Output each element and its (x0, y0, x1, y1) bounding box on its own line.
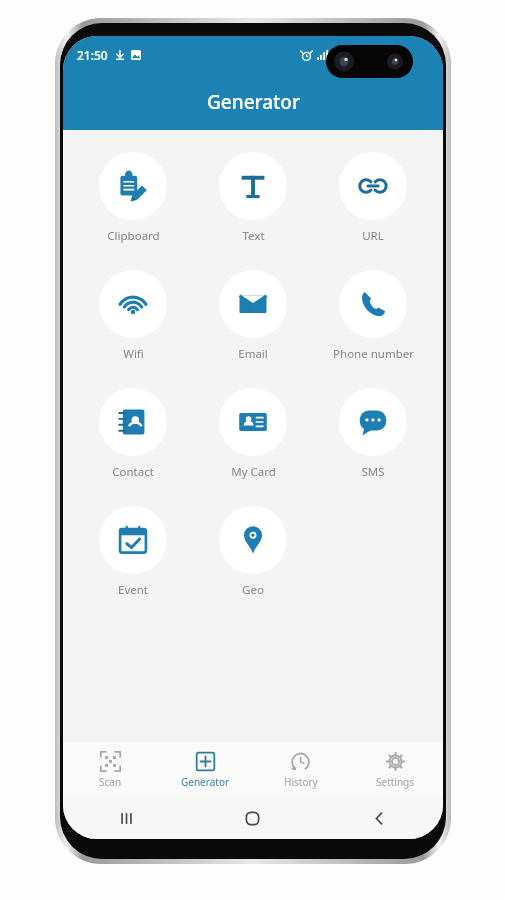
staticText: Generator (207, 89, 300, 115)
button[interactable]: Home (189, 797, 316, 839)
button[interactable]: SMS (313, 382, 433, 486)
button[interactable]: Geo (193, 500, 313, 604)
button[interactable]: Recent apps (63, 797, 189, 839)
button[interactable]: Settings (348, 742, 443, 797)
staticText: Contact (112, 464, 154, 480)
staticText: Settings (376, 775, 415, 789)
button[interactable]: Contact (73, 382, 193, 486)
staticText: Clipboard (107, 228, 160, 244)
staticText: SMS (361, 464, 385, 480)
button[interactable]: Wifi (73, 264, 193, 368)
staticText: Phone number (333, 346, 414, 362)
button[interactable]: Email (193, 264, 313, 368)
staticText: Text (242, 228, 265, 244)
button[interactable]: Back (316, 797, 443, 839)
button[interactable]: My Card (193, 382, 313, 486)
staticText: URL (362, 228, 384, 244)
staticText: 73 (333, 47, 347, 63)
button[interactable]: Event (73, 500, 193, 604)
staticText: Email (238, 346, 268, 362)
staticText: Event (118, 582, 148, 598)
staticText: Generator (181, 775, 230, 789)
staticText: Wifi (123, 346, 144, 362)
button[interactable]: Generator (158, 742, 253, 797)
button[interactable]: History (253, 742, 348, 797)
button[interactable]: Scan (63, 742, 158, 797)
button[interactable]: Clipboard (73, 146, 193, 250)
staticText: Scan (99, 775, 122, 789)
staticText: 21:50 (77, 47, 108, 63)
button[interactable]: Phone number (313, 264, 433, 368)
staticText: My Card (231, 464, 276, 480)
staticText: History (284, 775, 318, 789)
staticText: Geo (242, 582, 264, 598)
button[interactable]: URL (313, 146, 433, 250)
button[interactable]: Text (193, 146, 313, 250)
